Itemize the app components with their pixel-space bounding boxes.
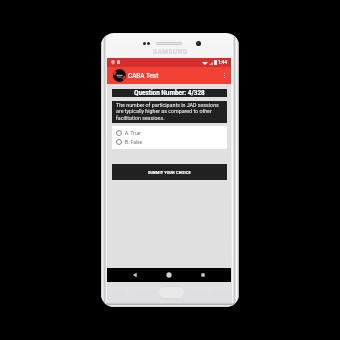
staticText: A. True (125, 130, 141, 136)
button[interactable]: Back (132, 272, 138, 278)
staticText: 1:44 (218, 60, 228, 65)
staticText: The number of participants in JAD sessio… (116, 102, 219, 122)
staticText: CABA Test (128, 72, 159, 80)
button[interactable]: More options (220, 67, 228, 84)
button[interactable]: Home (166, 272, 172, 278)
button[interactable]: B. False (112, 139, 227, 145)
button[interactable]: Home (158, 286, 185, 299)
button[interactable]: A. True (112, 130, 227, 136)
staticText: SUBMIT YOUR CHOICE (148, 170, 191, 174)
button[interactable]: Recent apps (200, 272, 206, 278)
staticText: Question Number: 4/328 (134, 89, 205, 97)
staticText: SAMSUNG (153, 48, 188, 56)
button[interactable]: SUBMIT YOUR CHOICE (112, 164, 227, 180)
staticText: B. False (125, 139, 143, 145)
